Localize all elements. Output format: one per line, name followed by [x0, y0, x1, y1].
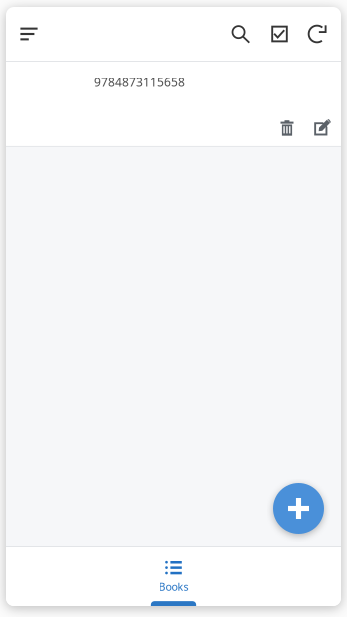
staticText: 9784873115658: [94, 74, 185, 90]
staticText: Books: [158, 579, 188, 594]
button[interactable]: Add book: [273, 483, 324, 534]
button[interactable]: Delete: [273, 111, 307, 145]
button[interactable]: Search: [221, 10, 260, 58]
button[interactable]: Refresh: [299, 10, 338, 58]
button[interactable]: Edit: [307, 111, 341, 145]
button[interactable]: Sort: [10, 10, 47, 58]
button[interactable]: Books: [113, 547, 233, 606]
button[interactable]: Select all: [260, 10, 299, 58]
